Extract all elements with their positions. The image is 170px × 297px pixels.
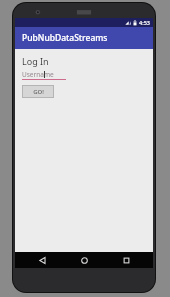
staticText: 4:53 <box>139 19 150 26</box>
button[interactable]: Recent apps <box>111 252 141 268</box>
staticText: Log In <box>22 55 49 67</box>
button[interactable]: Back <box>27 252 57 268</box>
staticText: Username <box>22 70 54 79</box>
button[interactable]: GO! <box>23 86 53 97</box>
button[interactable]: Username <box>22 70 66 80</box>
staticText: GO! <box>33 88 44 96</box>
button[interactable]: Home <box>69 252 99 268</box>
staticText: PubNubDataStreams <box>22 32 108 44</box>
